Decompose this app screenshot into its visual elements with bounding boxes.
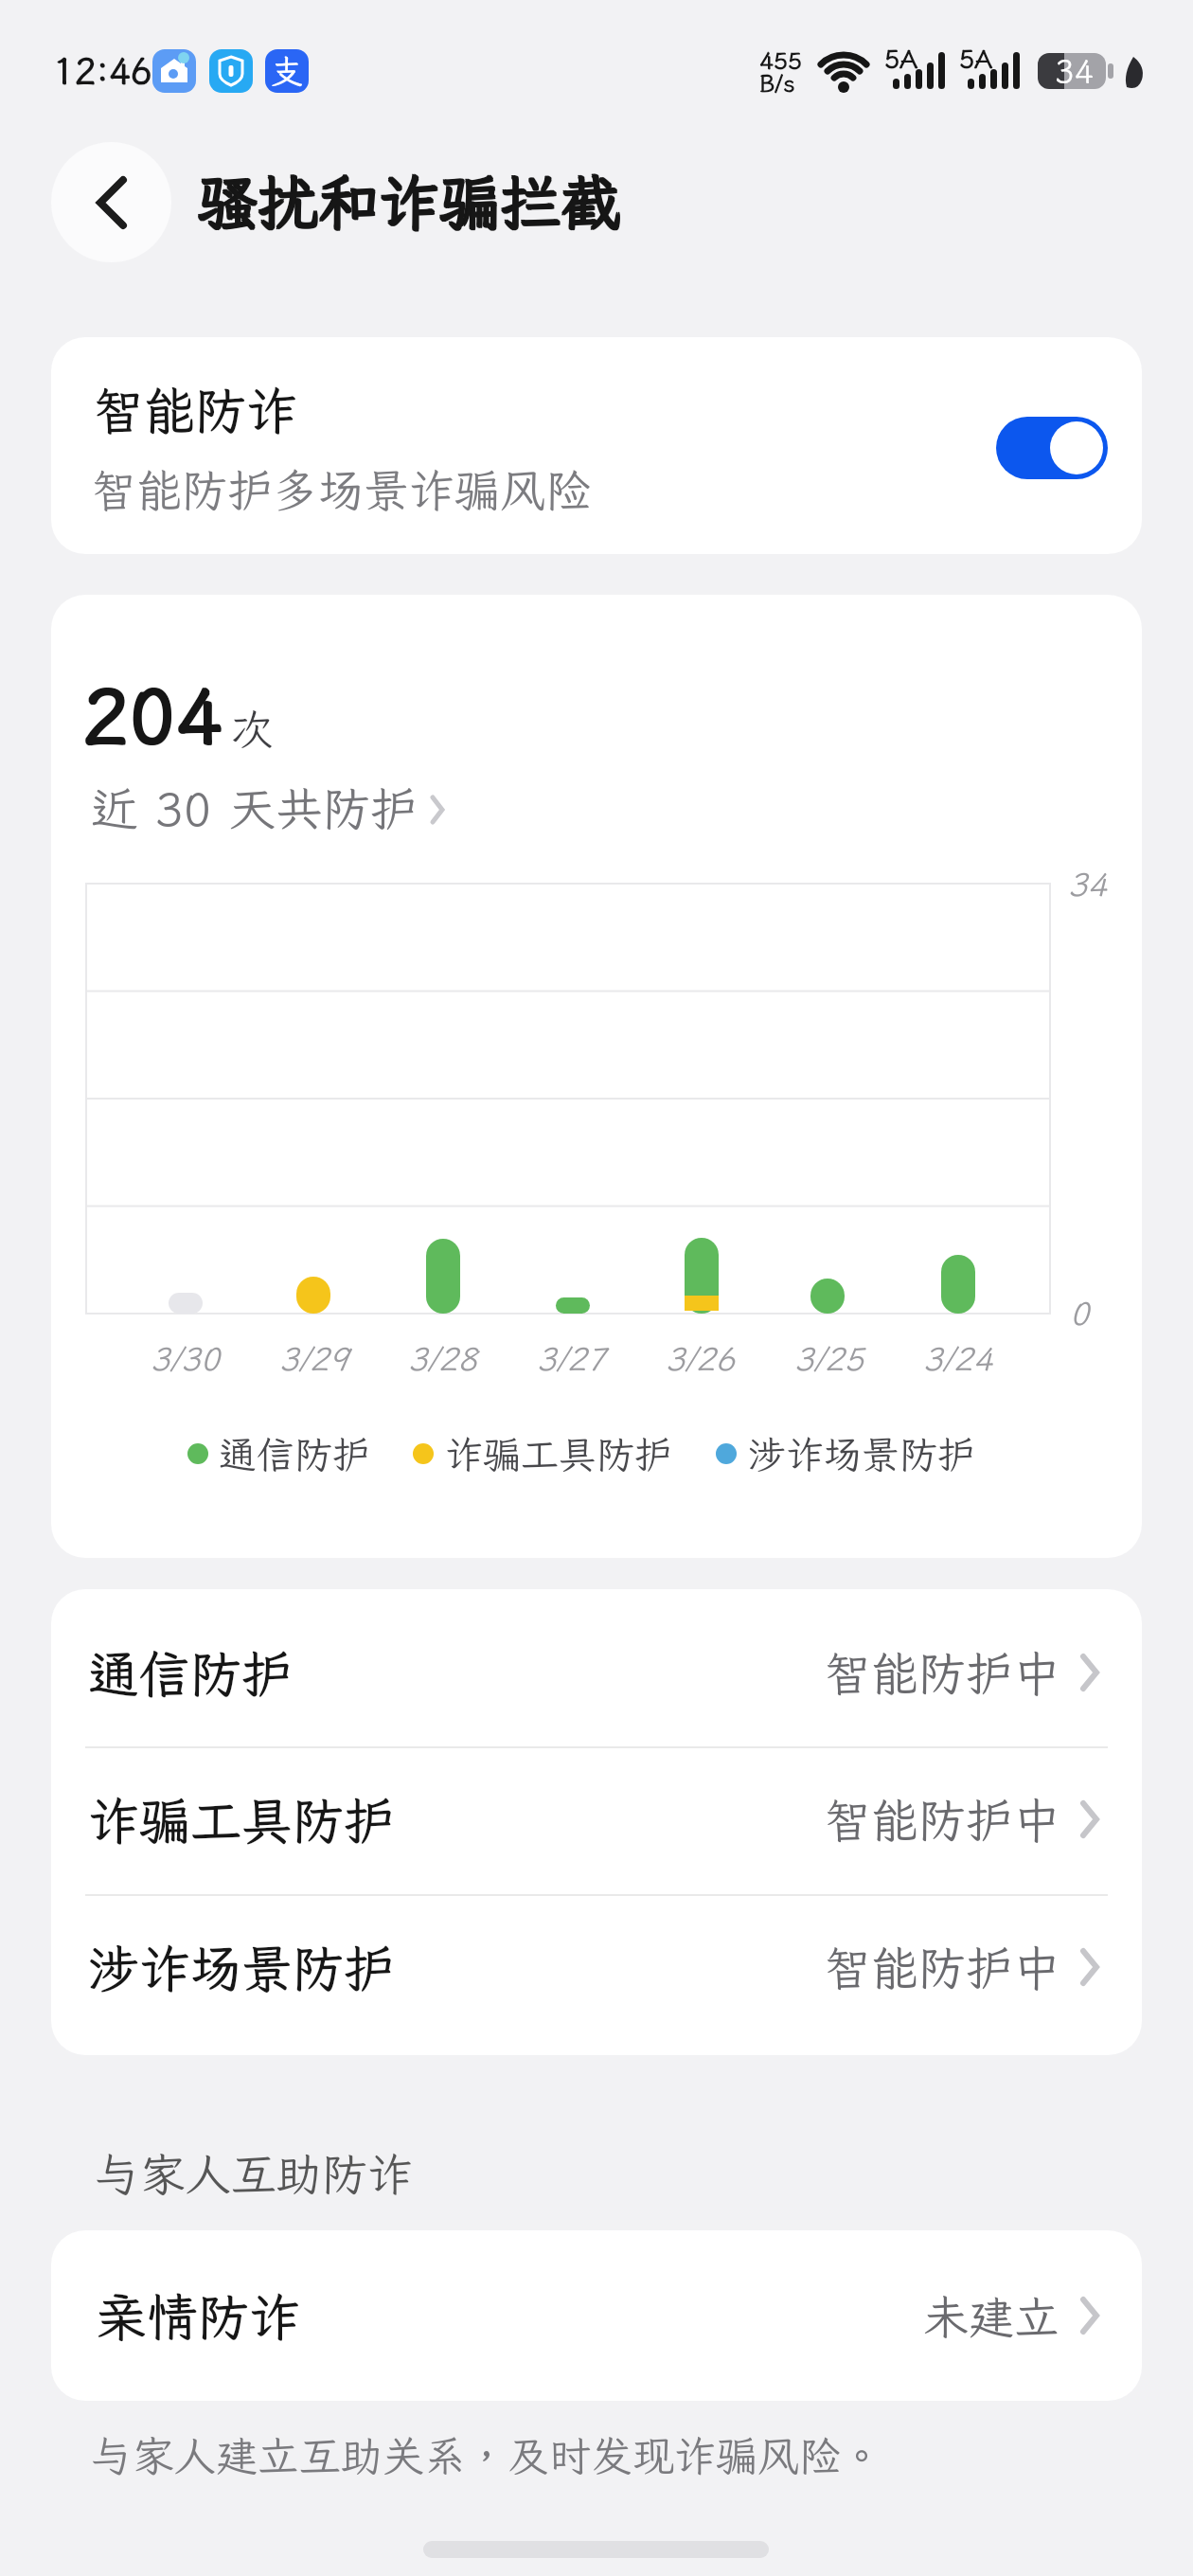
staticText: 智能防护中: [824, 1936, 1060, 1998]
staticText: 支: [271, 50, 303, 93]
staticText: 骚扰和诈骗拦截: [198, 161, 622, 241]
staticText: 5A: [959, 42, 992, 76]
staticText: 骚扰和诈骗拦截: [196, 161, 620, 241]
staticText: 204: [81, 664, 222, 766]
staticText: 亲情防诈: [96, 2282, 300, 2350]
staticText: 3/30: [151, 1337, 221, 1380]
staticText: 34: [1055, 50, 1094, 93]
button[interactable]: [85, 765, 454, 852]
button[interactable]: [996, 417, 1108, 479]
staticText: 次: [231, 702, 273, 757]
staticText: 与家人互助防诈: [95, 2143, 414, 2203]
staticText: 0: [1070, 1292, 1090, 1334]
staticText: 5A: [884, 42, 917, 76]
button[interactable]: [51, 1744, 1142, 1895]
staticText: 与家人建立互助关系，及时发现诈骗风险。: [91, 2428, 882, 2483]
staticText: 涉诈场景防护: [88, 1934, 395, 2001]
staticText: 3/25: [794, 1337, 864, 1380]
button[interactable]: [51, 142, 171, 262]
staticText: 3/26: [666, 1337, 736, 1380]
staticText: 未建立: [923, 2286, 1060, 2346]
button[interactable]: [51, 1891, 1142, 2043]
staticText: 455: [759, 45, 803, 76]
staticText: 诈骗工具防护: [88, 1786, 395, 1853]
staticText: 智能防护中: [824, 1641, 1060, 1704]
staticText: 近 30 天共防护: [91, 777, 418, 839]
button[interactable]: [51, 2230, 1142, 2401]
staticText: 12:46: [53, 47, 152, 95]
staticText: 204: [83, 664, 223, 766]
staticText: 204: [83, 662, 223, 764]
staticText: 通信防护: [88, 1639, 293, 1707]
staticText: 骚扰和诈骗拦截: [198, 163, 622, 242]
staticText: 通信防护: [219, 1429, 370, 1479]
staticText: 3/29: [279, 1337, 349, 1380]
staticText: 3/24: [923, 1337, 993, 1380]
button[interactable]: [51, 1597, 1142, 1748]
staticText: 智能防护中: [824, 1788, 1060, 1851]
staticText: 3/27: [537, 1337, 607, 1380]
staticText: 智能防护多场景诈骗风险: [91, 459, 592, 519]
staticText: 3/28: [408, 1337, 478, 1380]
staticText: B/s: [759, 67, 795, 98]
staticText: 智能防诈: [93, 376, 297, 443]
staticText: 34: [1068, 863, 1107, 905]
staticText: 涉诈场景防护: [748, 1429, 975, 1479]
staticText: 骚扰和诈骗拦截: [196, 163, 620, 242]
button[interactable]: [51, 337, 1142, 554]
staticText: 204: [81, 662, 222, 764]
staticText: 诈骗工具防护: [445, 1429, 672, 1479]
